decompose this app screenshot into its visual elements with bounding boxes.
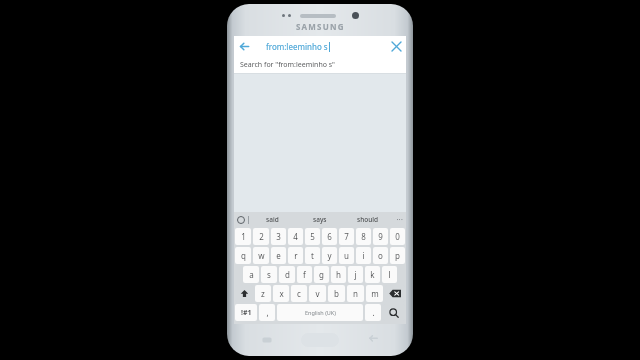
staticText: SAMSUNG xyxy=(296,21,345,32)
staticText: r xyxy=(294,250,298,261)
staticText: Search for "from:leeminho s" xyxy=(240,60,335,70)
staticText: d xyxy=(285,269,290,280)
staticText: says xyxy=(313,215,327,224)
button[interactable]: 4 xyxy=(288,228,303,245)
staticText: k xyxy=(370,269,375,280)
button[interactable]: i xyxy=(356,247,371,264)
button[interactable]: n xyxy=(347,285,364,302)
staticText: v xyxy=(315,288,320,299)
staticText: o xyxy=(378,250,383,261)
button[interactable]: Clear xyxy=(386,36,406,56)
staticText: 8 xyxy=(361,231,366,242)
button[interactable]: a xyxy=(243,266,259,283)
button[interactable]: , xyxy=(259,304,275,321)
staticText: j xyxy=(354,269,357,280)
staticText: 5 xyxy=(310,231,315,242)
staticText: w xyxy=(258,250,265,261)
staticText: 6 xyxy=(327,231,332,242)
staticText: from:leeminho s xyxy=(266,41,328,52)
staticText: t xyxy=(311,250,314,261)
button[interactable]: q xyxy=(235,247,251,264)
button[interactable]: 7 xyxy=(339,228,354,245)
button[interactable]: More suggestions xyxy=(392,212,406,227)
button[interactable]: w xyxy=(253,247,269,264)
button[interactable]: 3 xyxy=(271,228,286,245)
button[interactable]: 8 xyxy=(356,228,371,245)
staticText: i xyxy=(362,250,365,261)
staticText: z xyxy=(261,288,265,299)
staticText: x xyxy=(279,288,284,299)
staticText: e xyxy=(276,250,281,261)
staticText: 7 xyxy=(344,231,349,242)
button[interactable]: Search xyxy=(383,304,405,321)
button[interactable]: !#1 xyxy=(235,304,257,321)
staticText: l xyxy=(388,269,391,280)
staticText: English (UK) xyxy=(305,309,336,316)
staticText: ⋯ xyxy=(396,216,403,224)
button[interactable]: z xyxy=(255,285,271,302)
button[interactable]: e xyxy=(271,247,286,264)
button[interactable]: r xyxy=(288,247,303,264)
staticText: 9 xyxy=(378,231,383,242)
button[interactable]: should xyxy=(344,212,392,227)
button[interactable]: g xyxy=(314,266,329,283)
staticText: should xyxy=(357,215,379,224)
button[interactable]: Backspace xyxy=(385,285,405,302)
button[interactable]: 1 xyxy=(235,228,251,245)
button[interactable]: Emoji xyxy=(234,212,248,227)
staticText: h xyxy=(336,269,341,280)
button[interactable]: p xyxy=(390,247,405,264)
staticText: said xyxy=(266,215,279,224)
button[interactable]: Shift xyxy=(235,285,253,302)
staticText: p xyxy=(395,250,400,261)
button[interactable]: d xyxy=(279,266,295,283)
button[interactable]: English (UK) xyxy=(277,304,363,321)
staticText: 4 xyxy=(293,231,298,242)
button[interactable]: v xyxy=(309,285,326,302)
button[interactable]: 9 xyxy=(373,228,388,245)
button[interactable]: Back xyxy=(367,334,379,346)
staticText: . xyxy=(372,307,375,318)
staticText: 2 xyxy=(259,231,264,242)
button[interactable]: u xyxy=(339,247,354,264)
button[interactable]: l xyxy=(382,266,397,283)
button[interactable]: . xyxy=(365,304,381,321)
staticText: q xyxy=(241,250,246,261)
button[interactable]: Recents xyxy=(261,334,273,346)
staticText: !#1 xyxy=(241,308,252,318)
button[interactable]: Back xyxy=(234,36,254,56)
button[interactable]: s xyxy=(261,266,277,283)
staticText: f xyxy=(303,269,306,280)
staticText: m xyxy=(371,288,379,299)
button[interactable]: x xyxy=(273,285,289,302)
staticText: 0 xyxy=(395,231,400,242)
staticText: u xyxy=(344,250,349,261)
button[interactable]: 2 xyxy=(253,228,269,245)
button[interactable]: y xyxy=(322,247,337,264)
staticText: c xyxy=(297,288,301,299)
button[interactable]: h xyxy=(331,266,346,283)
staticText: n xyxy=(353,288,358,299)
button[interactable]: k xyxy=(365,266,380,283)
button[interactable]: f xyxy=(297,266,312,283)
staticText: g xyxy=(319,269,324,280)
button[interactable]: t xyxy=(305,247,320,264)
button[interactable]: b xyxy=(328,285,345,302)
button[interactable]: says xyxy=(296,212,344,227)
button[interactable]: m xyxy=(366,285,383,302)
staticText: 1 xyxy=(241,231,246,242)
staticText: s xyxy=(267,269,271,280)
button[interactable]: c xyxy=(291,285,307,302)
button[interactable]: Search for "from:leeminho s" xyxy=(234,56,406,73)
staticText: 3 xyxy=(276,231,281,242)
button[interactable]: 5 xyxy=(305,228,320,245)
button[interactable]: 6 xyxy=(322,228,337,245)
button[interactable]: 0 xyxy=(390,228,405,245)
staticText: , xyxy=(266,307,269,318)
staticText: b xyxy=(334,288,339,299)
button[interactable]: said xyxy=(249,212,296,227)
button[interactable]: j xyxy=(348,266,363,283)
button[interactable]: o xyxy=(373,247,388,264)
staticText: a xyxy=(249,269,254,280)
